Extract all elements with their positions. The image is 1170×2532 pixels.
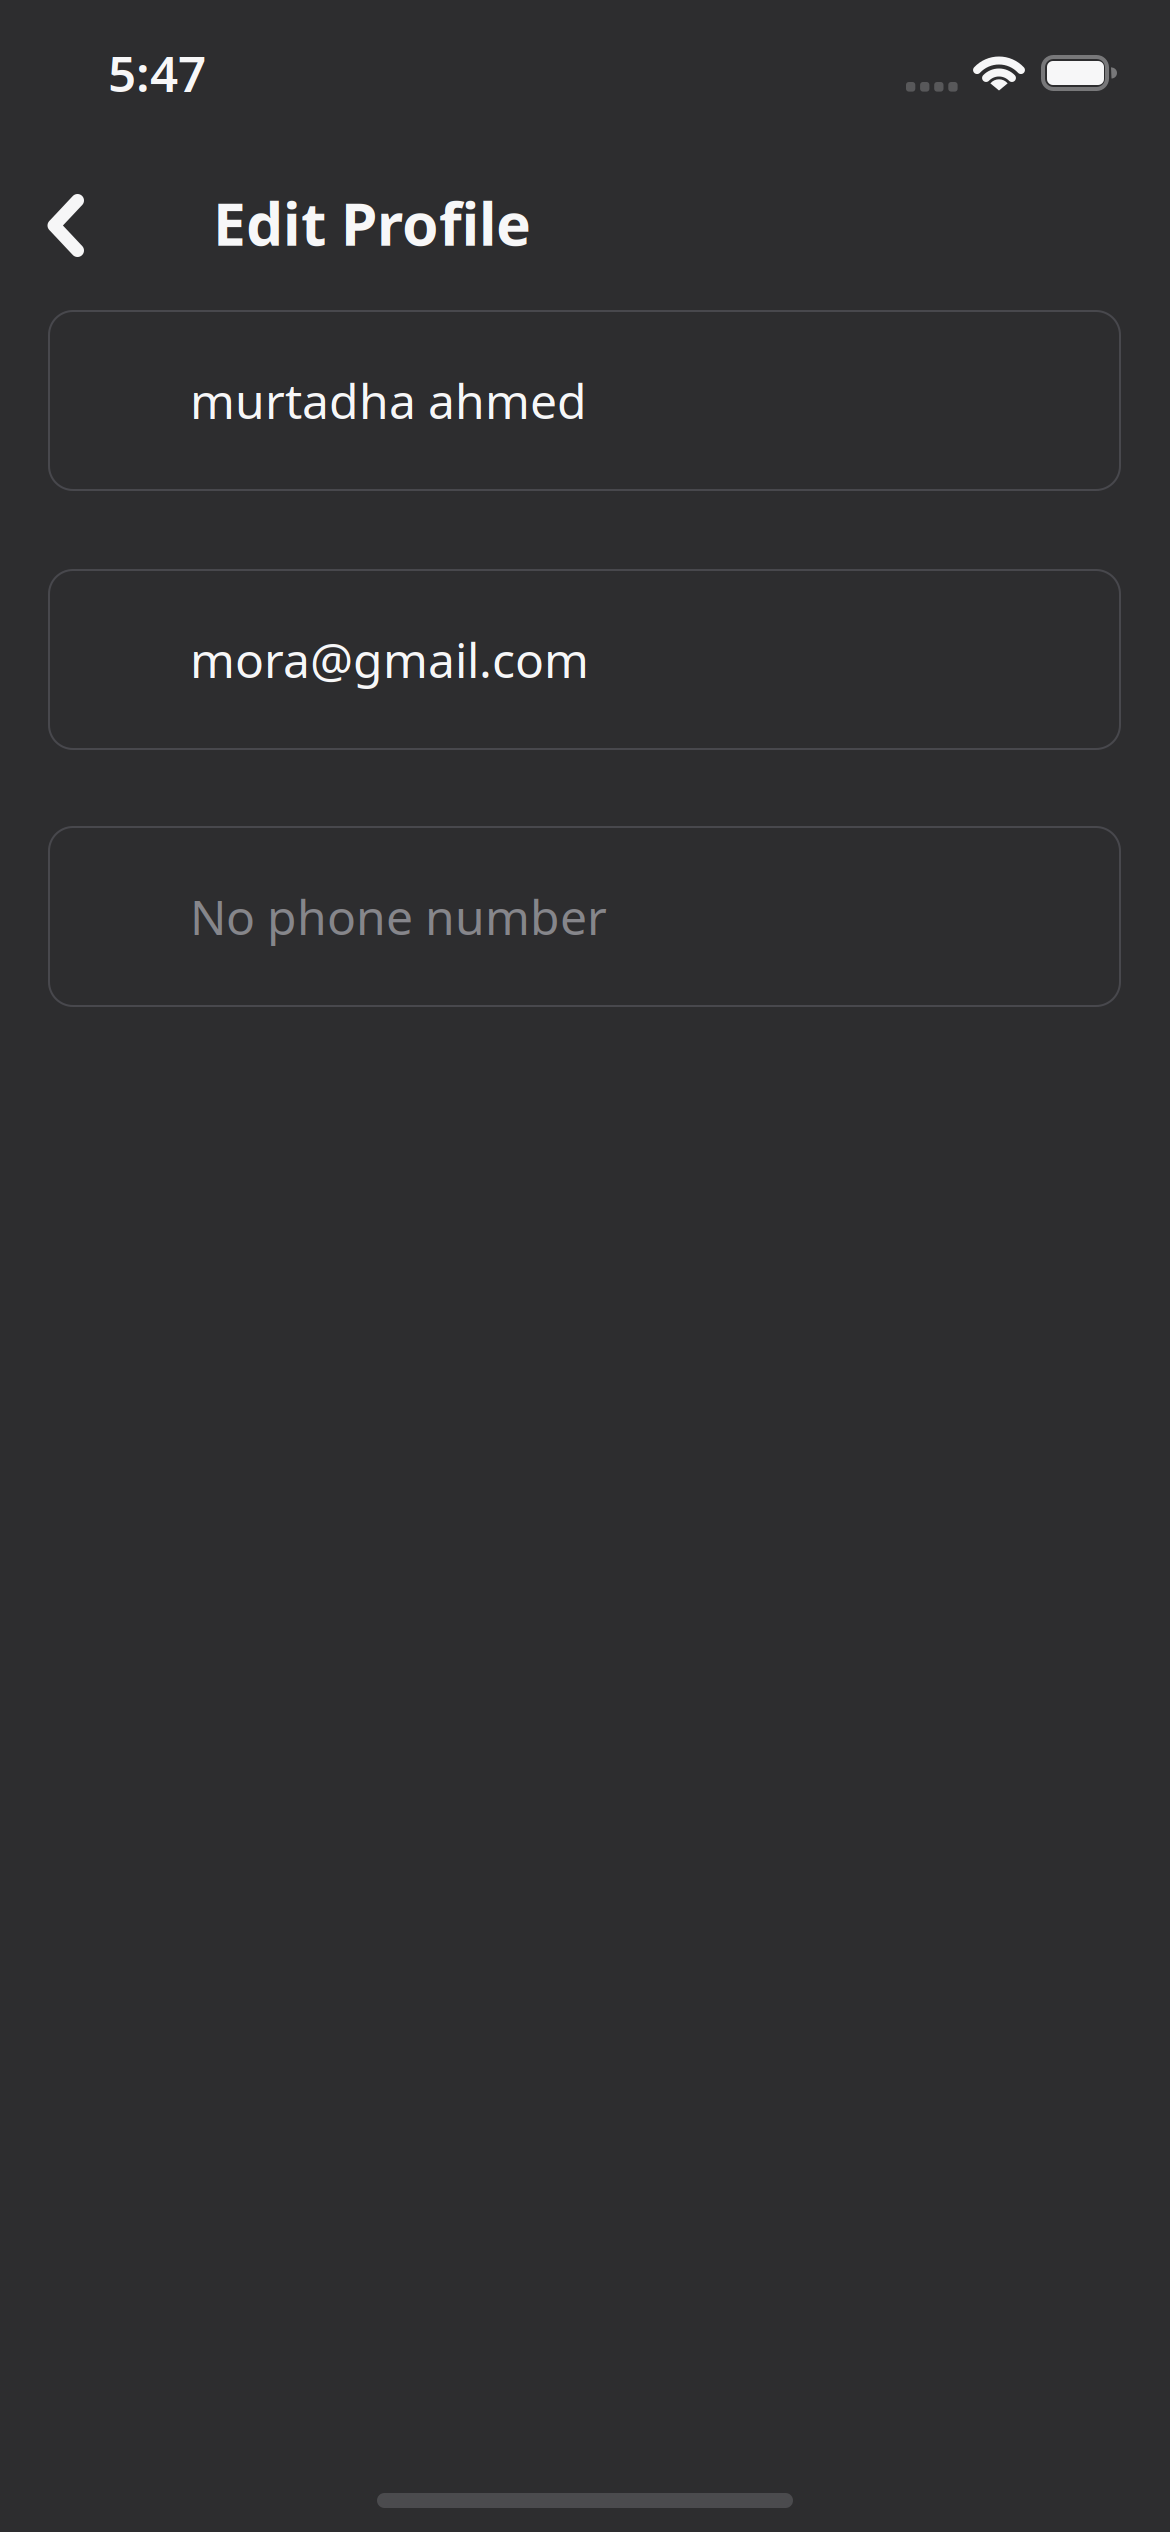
staticText: mora@gmail.com <box>190 628 589 691</box>
button[interactable]: mora@gmail.com <box>49 570 1120 749</box>
staticText: 5:47 <box>108 40 206 105</box>
staticText: murtadha ahmed <box>190 369 587 432</box>
button[interactable]: Back <box>47 194 84 257</box>
staticText: No phone number <box>190 885 607 948</box>
button[interactable]: murtadha ahmed <box>49 311 1120 490</box>
staticText: Edit Profile <box>213 184 531 262</box>
button[interactable]: No phone number <box>49 827 1120 1006</box>
